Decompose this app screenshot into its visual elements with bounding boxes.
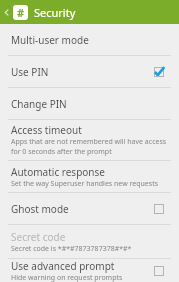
staticText: Security	[34, 5, 76, 20]
button[interactable]: Access timeout	[0, 120, 179, 160]
staticText: Apps that are not remembered will have a…	[11, 137, 167, 147]
staticText: Automatic response	[11, 165, 105, 179]
staticText: for 0 seconds after the prompt	[11, 147, 112, 157]
button[interactable]: Multi-user mode	[0, 24, 179, 55]
staticText: Hide warning on request prompts	[11, 273, 123, 282]
staticText: Use advanced prompt	[11, 259, 115, 273]
button[interactable]: Ghost mode	[0, 193, 179, 224]
button[interactable]: Use PIN	[0, 56, 179, 87]
staticText: #	[17, 5, 25, 20]
staticText: Secret code is *#*#7873787378#*#*	[11, 244, 132, 254]
button[interactable]: Change PIN	[0, 88, 179, 119]
staticText: Change PIN	[11, 97, 67, 111]
button[interactable]: Secret code	[0, 225, 179, 258]
button[interactable]: Use advanced prompt	[0, 259, 179, 282]
button[interactable]: Back	[0, 0, 13, 24]
staticText: Ghost mode	[11, 202, 153, 216]
button[interactable]: Automatic response	[0, 161, 179, 192]
staticText: Use PIN	[11, 65, 153, 79]
staticText: Access timeout	[11, 123, 82, 137]
staticText: Set the way Superuser handles new reques…	[11, 179, 159, 189]
staticText: Secret code	[11, 230, 66, 244]
staticText: Multi-user mode	[11, 33, 89, 47]
